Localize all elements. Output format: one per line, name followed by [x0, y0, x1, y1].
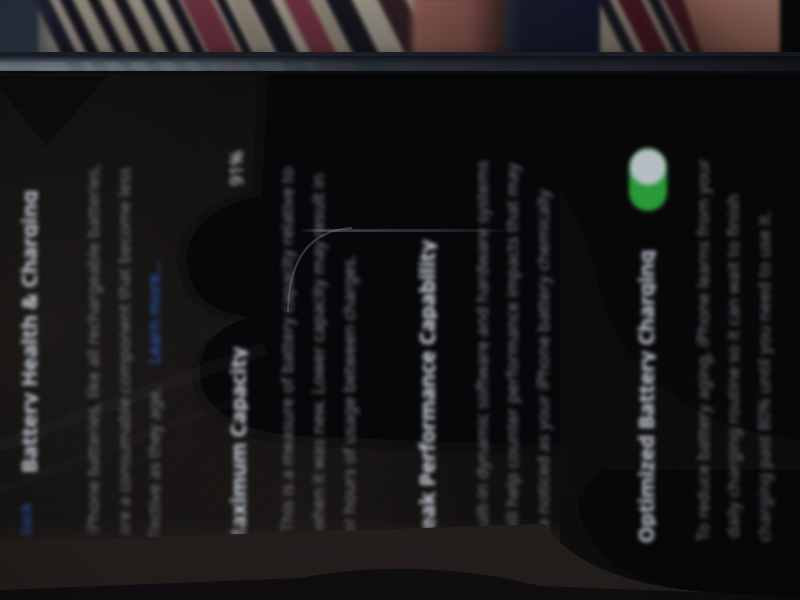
staticText: Battery Health & Charging: [14, 190, 38, 473]
staticText: fewer hours of usage between charges.: [337, 254, 360, 562]
staticText: Peak Performance Capability: [413, 240, 437, 543]
button[interactable]: Optimized Battery Charging toggle: [629, 148, 667, 211]
staticText: ‹ Back: [15, 503, 35, 545]
staticText: are a consumable component that become l…: [112, 167, 135, 536]
staticText: charging past 80% until you need to use …: [752, 210, 775, 542]
staticText: be noticed as your iPhone battery chemic…: [531, 189, 554, 538]
staticText: 91%: [224, 150, 248, 186]
staticText: Optimized Battery Charging: [632, 249, 656, 543]
staticText: To reduce battery aging, iPhone learns f…: [691, 158, 714, 541]
staticText: iPhone batteries, like all rechargeable …: [81, 164, 104, 535]
staticText: This is a measure of battery capacity re…: [275, 167, 298, 532]
staticText: Maximum Capacity: [224, 347, 248, 548]
staticText: effective as they age.: [142, 386, 165, 550]
staticText: Learn more...: [142, 260, 165, 364]
staticText: will help counter performance impacts th…: [500, 162, 523, 537]
staticText: when it was new. Lower capacity may resu…: [306, 173, 329, 531]
staticText: daily charging routine so it can wait to…: [721, 193, 744, 538]
button[interactable]: Back: [2, 478, 48, 570]
staticText: Built-in dynamic software and hardware s…: [470, 160, 493, 539]
